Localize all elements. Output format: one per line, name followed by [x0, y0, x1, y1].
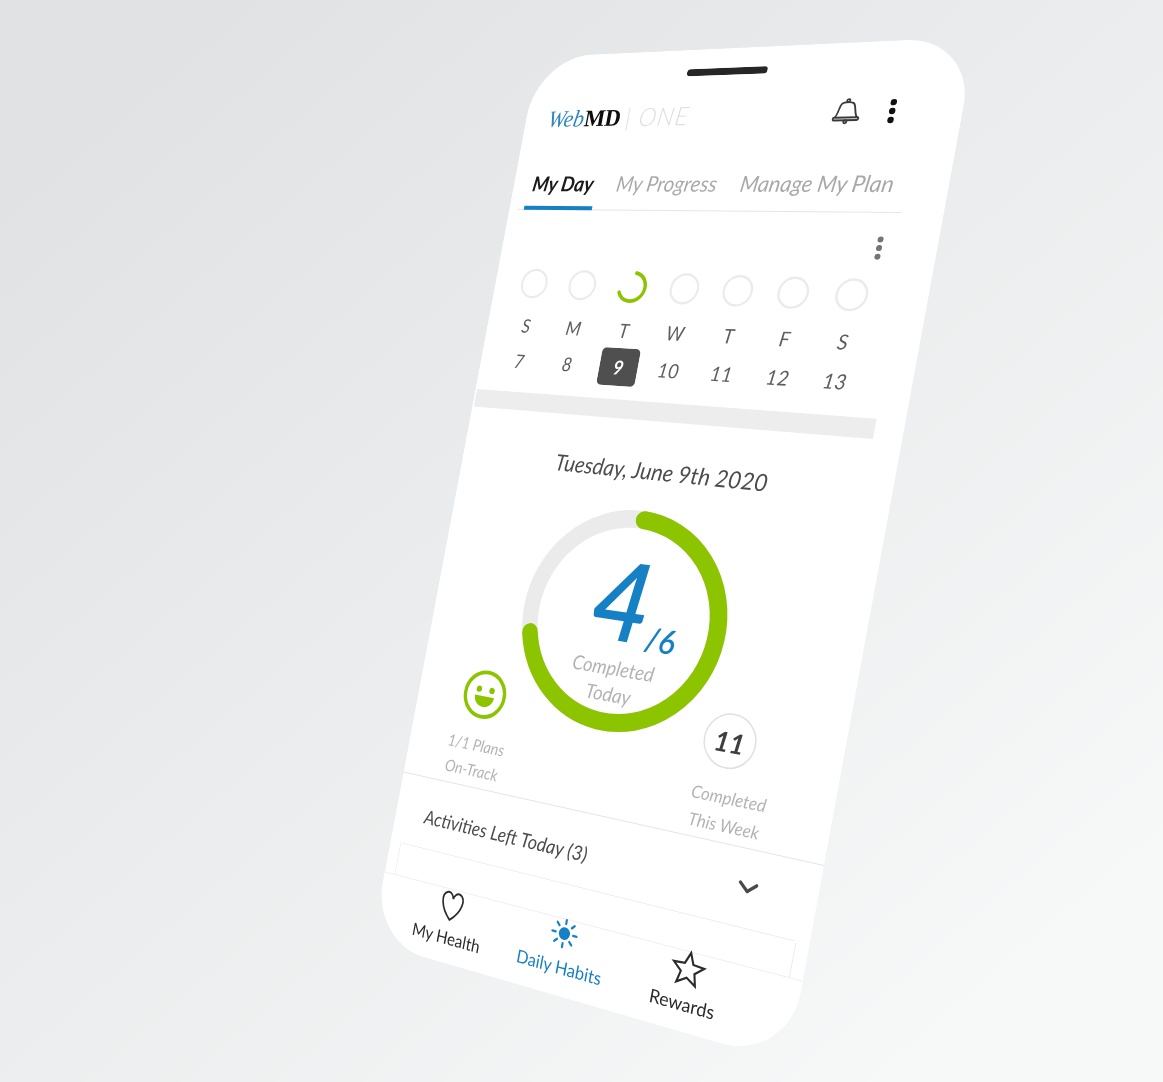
button[interactable]: Rewards [270, 839, 400, 895]
button[interactable] [12, 806, 428, 902]
